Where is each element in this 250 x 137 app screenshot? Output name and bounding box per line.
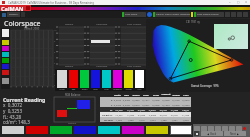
button[interactable]: App menu bbox=[2, 13, 6, 17]
button[interactable]: Window control bbox=[234, 0, 242, 5]
button[interactable]: Session 1 bbox=[7, 12, 20, 17]
staticText: 6 bbox=[54, 51, 56, 54]
staticText: White bbox=[56, 88, 68, 91]
staticText bbox=[28, 87, 33, 90]
staticText: 1,079 bbox=[180, 118, 191, 121]
staticText: Magenta bbox=[112, 88, 123, 91]
staticText: CMY bbox=[134, 88, 145, 91]
staticText: fL: 43,28 bbox=[3, 114, 22, 120]
staticText: Yellow bbox=[171, 93, 181, 96]
staticText: RGB Balance bbox=[65, 93, 81, 97]
staticText: 0,2206 bbox=[151, 98, 161, 101]
staticText: 0,3072 bbox=[181, 98, 191, 101]
staticText: 0 bbox=[54, 84, 56, 87]
staticText: CIE 1931 xy bbox=[186, 20, 200, 24]
staticText: 0,1524 bbox=[161, 103, 171, 106]
staticText: x bbox=[111, 98, 113, 101]
staticText: ◀ Back bbox=[207, 132, 217, 136]
staticText: 60,547 bbox=[158, 113, 169, 116]
staticText: 4,8906 bbox=[147, 113, 158, 116]
staticText: Next ▶ bbox=[230, 132, 240, 136]
staticText: 148,07 bbox=[180, 108, 191, 111]
staticText: 1,515 bbox=[136, 118, 147, 121]
staticText: Colorspace bbox=[4, 19, 41, 29]
button[interactable]: ◀ Back bbox=[201, 131, 223, 136]
staticText: 1,004 bbox=[113, 118, 125, 121]
staticText: ─ bbox=[229, 1, 231, 4]
staticText: Gamma bbox=[65, 23, 74, 26]
staticText: 1,088 bbox=[125, 118, 136, 121]
staticText: Cyan bbox=[101, 88, 112, 91]
staticText: Gamut Coverage: 99% bbox=[191, 84, 219, 88]
staticText: 0,3253 bbox=[113, 103, 122, 106]
button[interactable]: Window control bbox=[226, 0, 234, 5]
staticText: 0,2952 bbox=[131, 98, 141, 101]
staticText: Current Reading bbox=[3, 96, 46, 103]
staticText: Color Checker bbox=[127, 65, 142, 68]
staticText: 1,051 bbox=[169, 118, 180, 121]
staticText: fL bbox=[110, 108, 113, 111]
staticText: x 0,3072 bbox=[3, 102, 23, 108]
button[interactable]: Help bbox=[147, 12, 152, 17]
button[interactable]: Color Space bbox=[122, 12, 146, 17]
staticText: 17,737 bbox=[125, 108, 136, 111]
button[interactable]: CalMAN Client 3 Direct Advanced bbox=[153, 12, 190, 17]
staticText: White bbox=[113, 93, 122, 96]
staticText: 8 bbox=[54, 40, 56, 43]
staticText: 0,5090 bbox=[171, 103, 181, 106]
staticText: CalMAN Client 3 Direct Advanced bbox=[156, 13, 190, 16]
staticText: 4 bbox=[54, 62, 56, 65]
staticText: 0,3072 bbox=[113, 98, 122, 101]
staticText: y bbox=[111, 103, 113, 106]
staticText: 77,067 bbox=[113, 108, 125, 111]
staticText: CMY bbox=[181, 93, 191, 96]
staticText bbox=[33, 87, 38, 90]
button[interactable]: Next ▶ bbox=[224, 131, 246, 136]
staticText: CalMAN 2019 CalMAN Ultimate for Business… bbox=[8, 1, 94, 5]
staticText: Green bbox=[79, 88, 90, 91]
staticText: 71,928 bbox=[180, 113, 191, 116]
button[interactable]: Color Display Control bbox=[194, 12, 224, 17]
staticText: 71,928 bbox=[169, 108, 180, 111]
staticText: Magenta bbox=[161, 92, 171, 97]
staticText: □ bbox=[237, 1, 240, 4]
staticText: 22,031 bbox=[169, 113, 180, 116]
staticText: 60,747 bbox=[158, 108, 169, 111]
staticText: 1,288 bbox=[158, 118, 169, 121]
staticText: Blue bbox=[141, 93, 151, 96]
staticText: 4,8071 bbox=[147, 108, 158, 111]
staticText: CalMAN bbox=[1, 5, 24, 11]
staticText: dE 2000 bbox=[104, 118, 113, 121]
staticText: 0,3253 bbox=[181, 103, 191, 106]
staticText: ✕ bbox=[245, 1, 248, 4]
staticText: Session 1 bbox=[9, 13, 19, 16]
button[interactable]: Stop bbox=[194, 131, 199, 136]
staticText: Target fL bbox=[102, 113, 113, 116]
staticText: Yellow bbox=[123, 88, 134, 91]
staticText: Delta E 2000 bbox=[24, 27, 40, 31]
staticText: Red bbox=[68, 88, 79, 91]
button[interactable]: Window control bbox=[242, 0, 250, 5]
staticText bbox=[38, 87, 43, 90]
staticText: Color Display Control bbox=[197, 13, 219, 16]
